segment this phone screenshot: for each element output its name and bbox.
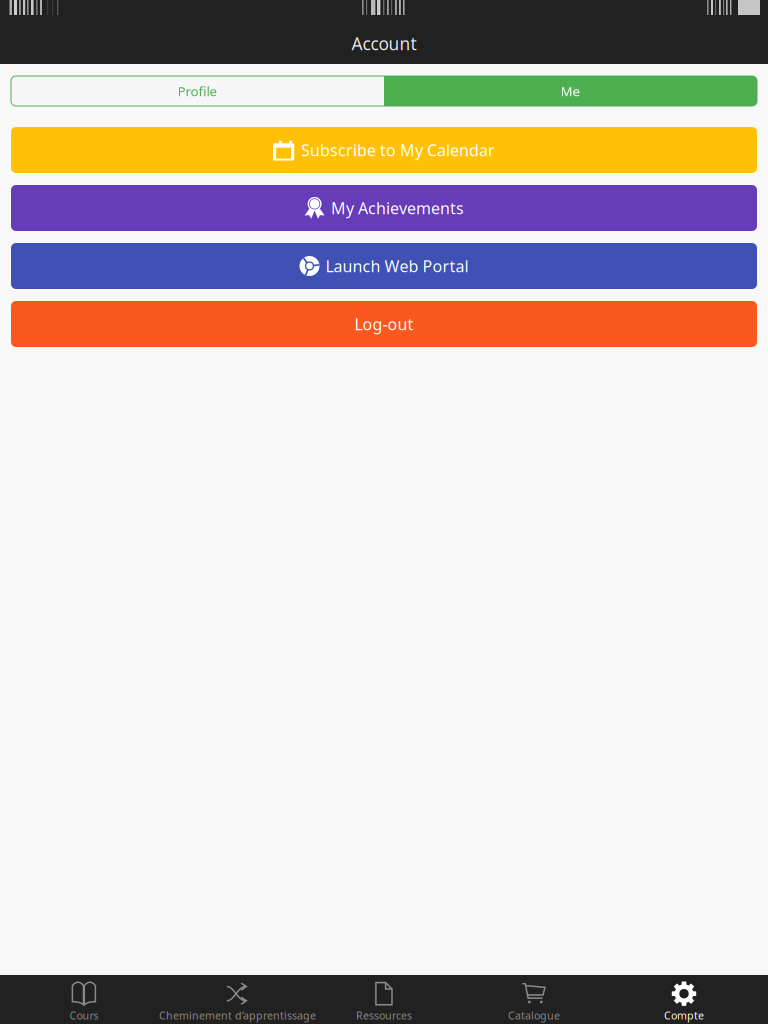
button[interactable]: Launch Web Portal [11,243,757,289]
button[interactable]: Subscribe to My Calendar [11,127,757,173]
staticText: Cours [69,1008,98,1022]
staticText: Log-out [354,313,413,335]
staticText: Compte [664,1008,704,1022]
staticText: Subscribe to My Calendar [301,139,495,161]
button[interactable]: Cheminement d’apprentissage [159,975,309,1024]
button[interactable]: Compte [609,975,759,1024]
button[interactable]: Log-out [11,301,757,347]
button[interactable]: Catalogue [459,975,609,1024]
staticText: Me [560,82,580,100]
button[interactable]: My Achievements [11,185,757,231]
staticText: Cheminement d’apprentissage [159,1008,316,1022]
staticText: Account [351,32,416,55]
staticText: Profile [177,82,217,100]
button[interactable]: Cours [9,975,159,1024]
staticText: Ressources [356,1008,412,1022]
staticText: My Achievements [331,197,464,219]
button[interactable]: Profile [11,76,384,106]
staticText: Launch Web Portal [325,255,468,277]
button[interactable]: Ressources [309,975,459,1024]
button[interactable]: Me [384,76,757,106]
staticText: Catalogue [508,1008,560,1022]
